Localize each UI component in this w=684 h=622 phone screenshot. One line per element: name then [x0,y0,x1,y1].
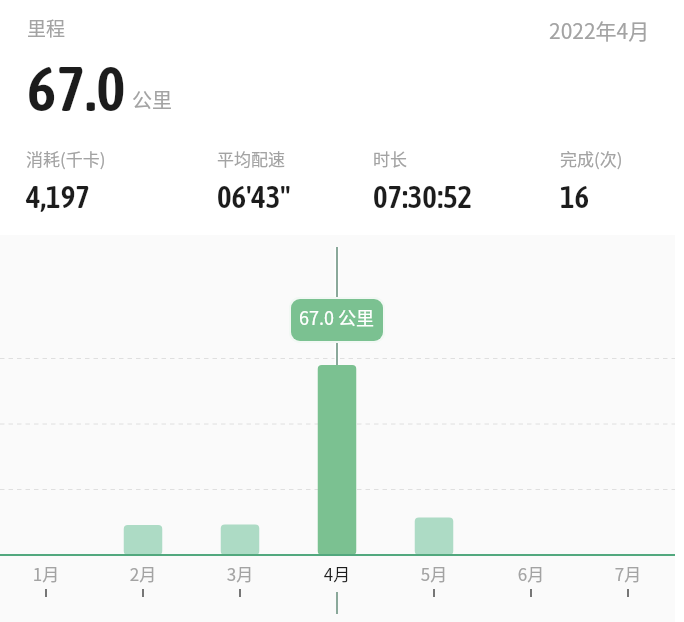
staticText: 完成(次) [560,146,623,171]
staticText: 7月 [598,561,658,586]
staticText: 4,197 [26,179,90,215]
staticText: 里程 [27,14,66,42]
button[interactable]: 完成(次) [560,146,623,215]
button[interactable]: 6月 [501,561,561,586]
staticText: 平均配速 [217,146,285,171]
staticText: 2月 [113,561,173,586]
staticText: 16 [560,179,590,215]
staticText: 06'43" [217,179,291,215]
staticText: 2022年4月 [549,15,650,45]
staticText: 3月 [210,561,270,586]
other: Monthly distance bar chart [0,0,684,622]
staticText: 5月 [404,561,464,586]
staticText: 公里 [132,85,172,114]
button[interactable]: 2月 [113,561,173,586]
staticText: 07:30:52 [373,179,473,215]
button[interactable]: 时长 [373,146,473,215]
button[interactable]: 1月 [16,561,76,586]
button[interactable]: 平均配速 [217,146,291,215]
staticText: 67.0 [27,53,126,124]
button[interactable]: 67.0 公里 [291,299,383,341]
button[interactable]: 3月 [210,561,270,586]
button[interactable]: 消耗(千卡) [26,146,106,215]
staticText: 6月 [501,561,561,586]
staticText: 67.0 公里 [299,304,375,330]
staticText: 时长 [373,146,407,171]
button[interactable]: 7月 [598,561,658,586]
button[interactable]: 4月 [307,561,367,586]
staticText: 消耗(千卡) [26,146,106,171]
button[interactable]: 5月 [404,561,464,586]
staticText: 1月 [16,561,76,586]
staticText: 4月 [307,561,367,586]
